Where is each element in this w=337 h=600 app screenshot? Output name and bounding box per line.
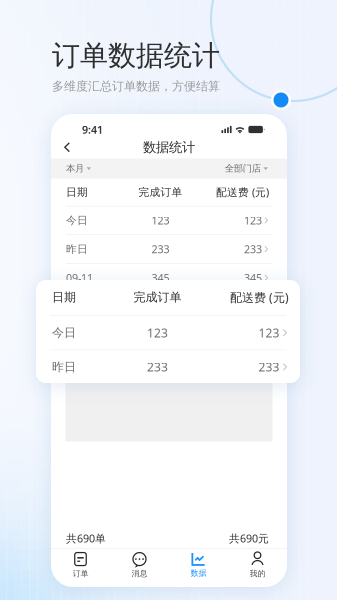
staticText: 配送费 (元) xyxy=(230,289,289,305)
staticText: 09-11 xyxy=(66,271,93,285)
staticText: 233 xyxy=(244,242,262,256)
staticText: 日期 xyxy=(52,290,76,305)
staticText: 今日 xyxy=(66,214,88,227)
staticText: 数据统计 xyxy=(143,139,195,155)
staticText: 日期 xyxy=(66,185,88,199)
staticText: 配送费 (元) xyxy=(216,185,269,199)
button[interactable]: Back xyxy=(58,137,76,157)
staticText: 完成订单 xyxy=(139,185,183,199)
staticText: 本月 xyxy=(66,163,84,174)
staticText: 123 xyxy=(258,325,279,341)
staticText: 共690元 xyxy=(229,531,269,545)
staticText: 123 xyxy=(147,325,168,341)
button[interactable]: 昨日 xyxy=(36,350,300,384)
staticText: 共690单 xyxy=(66,531,106,545)
staticText: 今日 xyxy=(52,325,76,340)
staticText: 消息 xyxy=(131,569,147,578)
staticText: 345 xyxy=(244,271,262,285)
button[interactable]: 今日 xyxy=(36,316,300,349)
button[interactable]: 09-11 xyxy=(51,264,287,292)
staticText: 完成订单 xyxy=(134,290,182,305)
button[interactable]: 消息 xyxy=(110,549,169,581)
button[interactable]: 订单 xyxy=(51,549,110,581)
staticText: 123 xyxy=(244,213,262,227)
staticText: 昨日 xyxy=(52,360,76,374)
button[interactable]: 全部门店 xyxy=(225,159,268,178)
button[interactable]: 数据 xyxy=(169,549,228,581)
staticText: 233 xyxy=(152,242,170,256)
staticText: 345 xyxy=(152,271,170,285)
staticText: 全部门店 xyxy=(225,163,261,174)
staticText: 9:41 xyxy=(82,122,103,137)
button[interactable]: 今日 xyxy=(51,206,287,234)
staticText: 订单 xyxy=(72,569,88,578)
button[interactable]: 昨日 xyxy=(51,235,287,263)
staticText: 233 xyxy=(147,359,168,375)
button[interactable]: 本月 xyxy=(66,159,91,178)
staticText: 多维度汇总订单数据，方便结算 xyxy=(52,79,220,93)
button[interactable]: 我的 xyxy=(228,549,287,581)
staticText: 数据 xyxy=(190,568,206,578)
staticText: 订单数据统计 xyxy=(52,38,220,73)
staticText: 123 xyxy=(152,213,170,227)
staticText: 我的 xyxy=(249,569,265,578)
staticText: 昨日 xyxy=(66,242,88,256)
staticText: 233 xyxy=(258,359,279,375)
